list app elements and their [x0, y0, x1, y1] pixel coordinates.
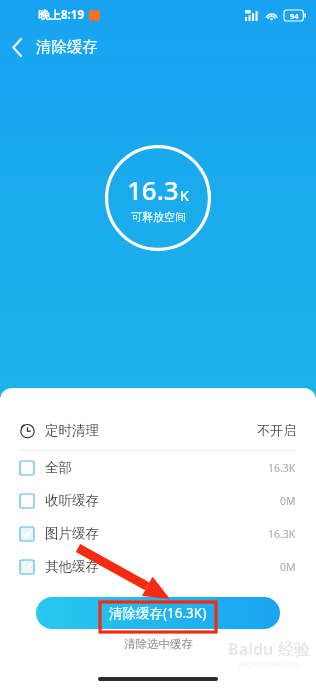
staticText: 16.3	[127, 172, 179, 207]
staticText: 清除缓存(16.3K)	[109, 604, 207, 622]
staticText: 0M	[280, 494, 296, 508]
button[interactable]: 其他缓存	[0, 550, 316, 583]
staticText: Baidu 经验	[228, 638, 310, 660]
button[interactable]: Back	[0, 30, 34, 64]
staticText: jingyan.baidu.com	[239, 660, 300, 670]
staticText: 清除缓存	[36, 37, 98, 57]
staticText: K	[180, 186, 189, 205]
staticText: 全部	[45, 459, 72, 476]
staticText: 晚上8:19	[38, 7, 84, 23]
staticText: 不开启	[257, 422, 296, 438]
button[interactable]: 全部	[0, 451, 316, 484]
button[interactable]: 收听缓存	[0, 484, 316, 517]
staticText: 定时清理	[45, 422, 99, 439]
button[interactable]: 清除缓存(16.3K)	[36, 597, 280, 629]
staticText: 其他缓存	[45, 558, 99, 575]
button[interactable]: 图片缓存	[0, 517, 316, 550]
staticText: 16.3K	[268, 527, 296, 541]
staticText: 清除选中缓存	[124, 637, 193, 651]
staticText: 图片缓存	[45, 525, 99, 542]
button[interactable]: 定时清理	[0, 410, 316, 450]
staticText: 可释放空间	[131, 210, 186, 224]
staticText: 0M	[280, 560, 296, 574]
staticText: 94	[290, 11, 299, 21]
staticText: 16.3K	[268, 461, 296, 475]
staticText: 收听缓存	[45, 492, 99, 509]
